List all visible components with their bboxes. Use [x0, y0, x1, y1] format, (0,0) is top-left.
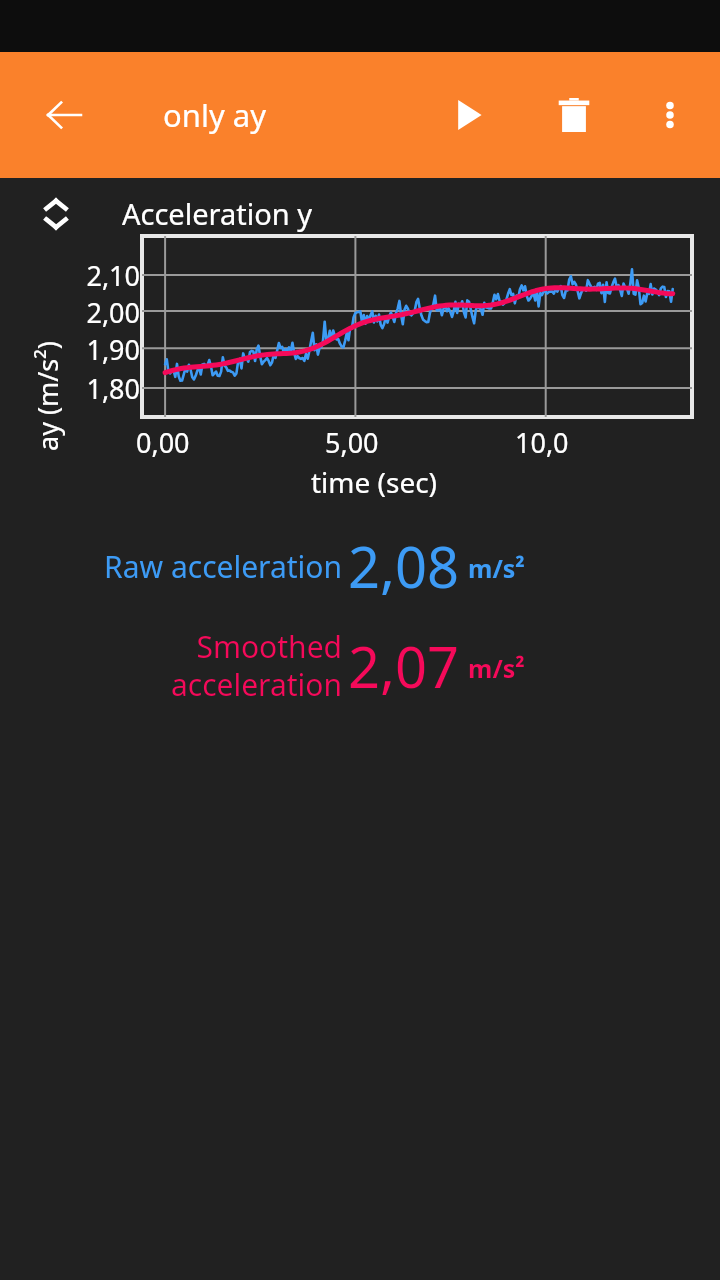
staticText: 2,07	[348, 628, 460, 704]
staticText: 2,08	[348, 528, 460, 604]
button[interactable]: Back	[30, 81, 98, 149]
staticText: 10,0	[515, 424, 569, 461]
staticText: Acceleration y	[122, 194, 312, 233]
button[interactable]: Expand chart	[32, 190, 80, 238]
button[interactable]: Raw acceleration	[0, 528, 720, 604]
staticText: 2,00	[66, 294, 140, 331]
staticText: time (sec)	[28, 463, 720, 501]
staticText: m/s²	[468, 651, 525, 685]
button[interactable]: Play	[437, 83, 501, 147]
staticText: Raw acceleration	[104, 546, 342, 587]
button[interactable]: Smoothed acceleration	[0, 626, 720, 705]
staticText: m/s²	[468, 551, 525, 585]
staticText: 0,00	[136, 424, 190, 461]
button[interactable]: More options	[640, 85, 700, 145]
staticText: 1,80	[66, 370, 140, 407]
staticText: 5,00	[325, 424, 379, 461]
staticText: 2,10	[66, 257, 140, 294]
staticText: only ay	[163, 94, 266, 136]
staticText: Smoothed acceleration	[170, 626, 342, 705]
button[interactable]: Delete	[542, 83, 606, 147]
staticText: 1,90	[66, 331, 140, 368]
staticText: ay (m/s²)	[29, 341, 66, 451]
